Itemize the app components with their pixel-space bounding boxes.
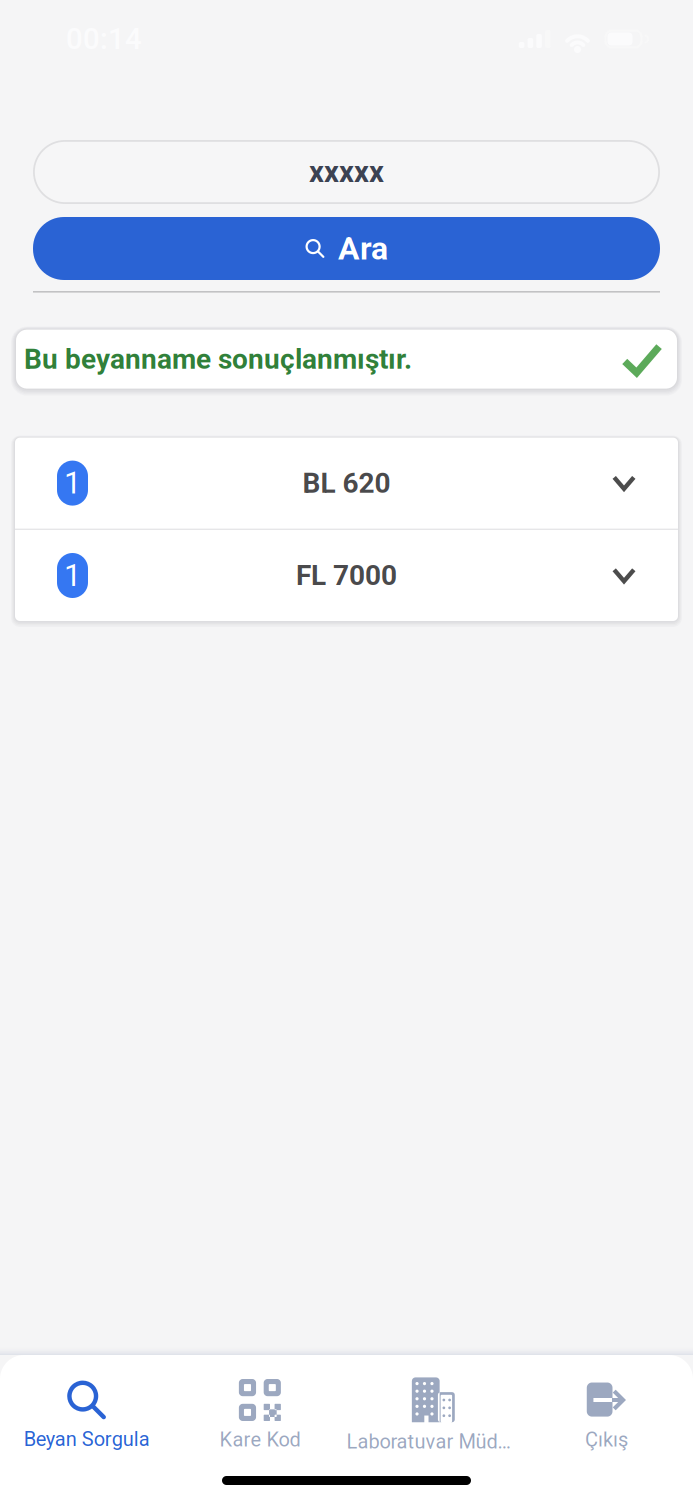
staticText: BL 620 — [302, 467, 390, 499]
button[interactable]: 1 — [15, 530, 678, 621]
staticText: Çıkış — [585, 1428, 628, 1451]
button[interactable]: Çıkış — [520, 1357, 693, 1459]
staticText: Kare Kod — [219, 1428, 300, 1451]
staticText: Ara — [338, 230, 388, 267]
button[interactable]: 1 — [15, 438, 678, 529]
staticText: 1 — [64, 465, 81, 501]
button[interactable]: Laboratuvar Müdü... — [346, 1355, 520, 1461]
staticText: Laboratuvar Müdü... — [346, 1430, 520, 1453]
staticText: Bu beyanname sonuçlanmıştır. — [24, 343, 412, 375]
staticText: xxxxx — [309, 155, 384, 189]
button[interactable]: Beyan Sorgula — [0, 1357, 173, 1459]
staticText: FL 7000 — [296, 559, 397, 592]
staticText: Beyan Sorgula — [24, 1427, 150, 1451]
button[interactable]: Kare Kod — [173, 1357, 346, 1459]
button[interactable]: Ara — [33, 217, 660, 280]
staticText: 1 — [64, 557, 81, 593]
